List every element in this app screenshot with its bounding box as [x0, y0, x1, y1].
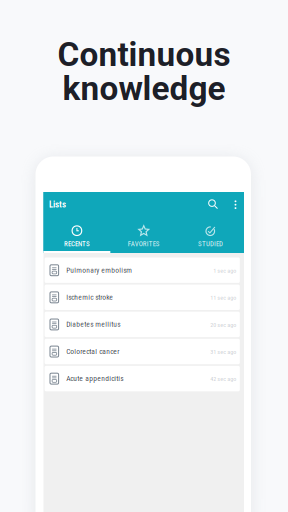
staticText: knowledge — [62, 69, 225, 108]
staticText: 20 sec ago — [210, 321, 236, 328]
button[interactable]: STUDIED — [177, 216, 244, 251]
button[interactable]: Search — [208, 199, 219, 210]
button[interactable]: More options — [230, 199, 241, 210]
staticText: Ischemic stroke — [66, 293, 113, 301]
staticText: Continuous — [57, 35, 230, 74]
staticText: 11 sec ago — [210, 294, 236, 301]
staticText: Lists — [49, 199, 66, 210]
button[interactable]: Diabetes mellitus — [45, 312, 240, 337]
staticText: Acute appendicitis — [66, 374, 123, 383]
button[interactable]: FAVORITES — [110, 216, 177, 251]
staticText: RECENTS — [64, 240, 90, 248]
button[interactable]: Acute appendicitis — [45, 366, 240, 391]
staticText: Pulmonary embolism — [66, 266, 132, 274]
staticText: Colorectal cancer — [66, 347, 119, 356]
button[interactable]: RECENTS — [43, 216, 110, 251]
button[interactable]: Pulmonary embolism — [45, 257, 240, 283]
button[interactable]: Ischemic stroke — [45, 285, 240, 310]
staticText: FAVORITES — [128, 240, 160, 248]
staticText: STUDIED — [198, 240, 223, 248]
staticText: 42 sec ago — [210, 375, 236, 383]
staticText: Diabetes mellitus — [66, 320, 120, 329]
button[interactable]: Colorectal cancer — [45, 339, 240, 364]
staticText: 1 sec ago — [213, 267, 236, 274]
staticText: 31 sec ago — [210, 348, 236, 355]
